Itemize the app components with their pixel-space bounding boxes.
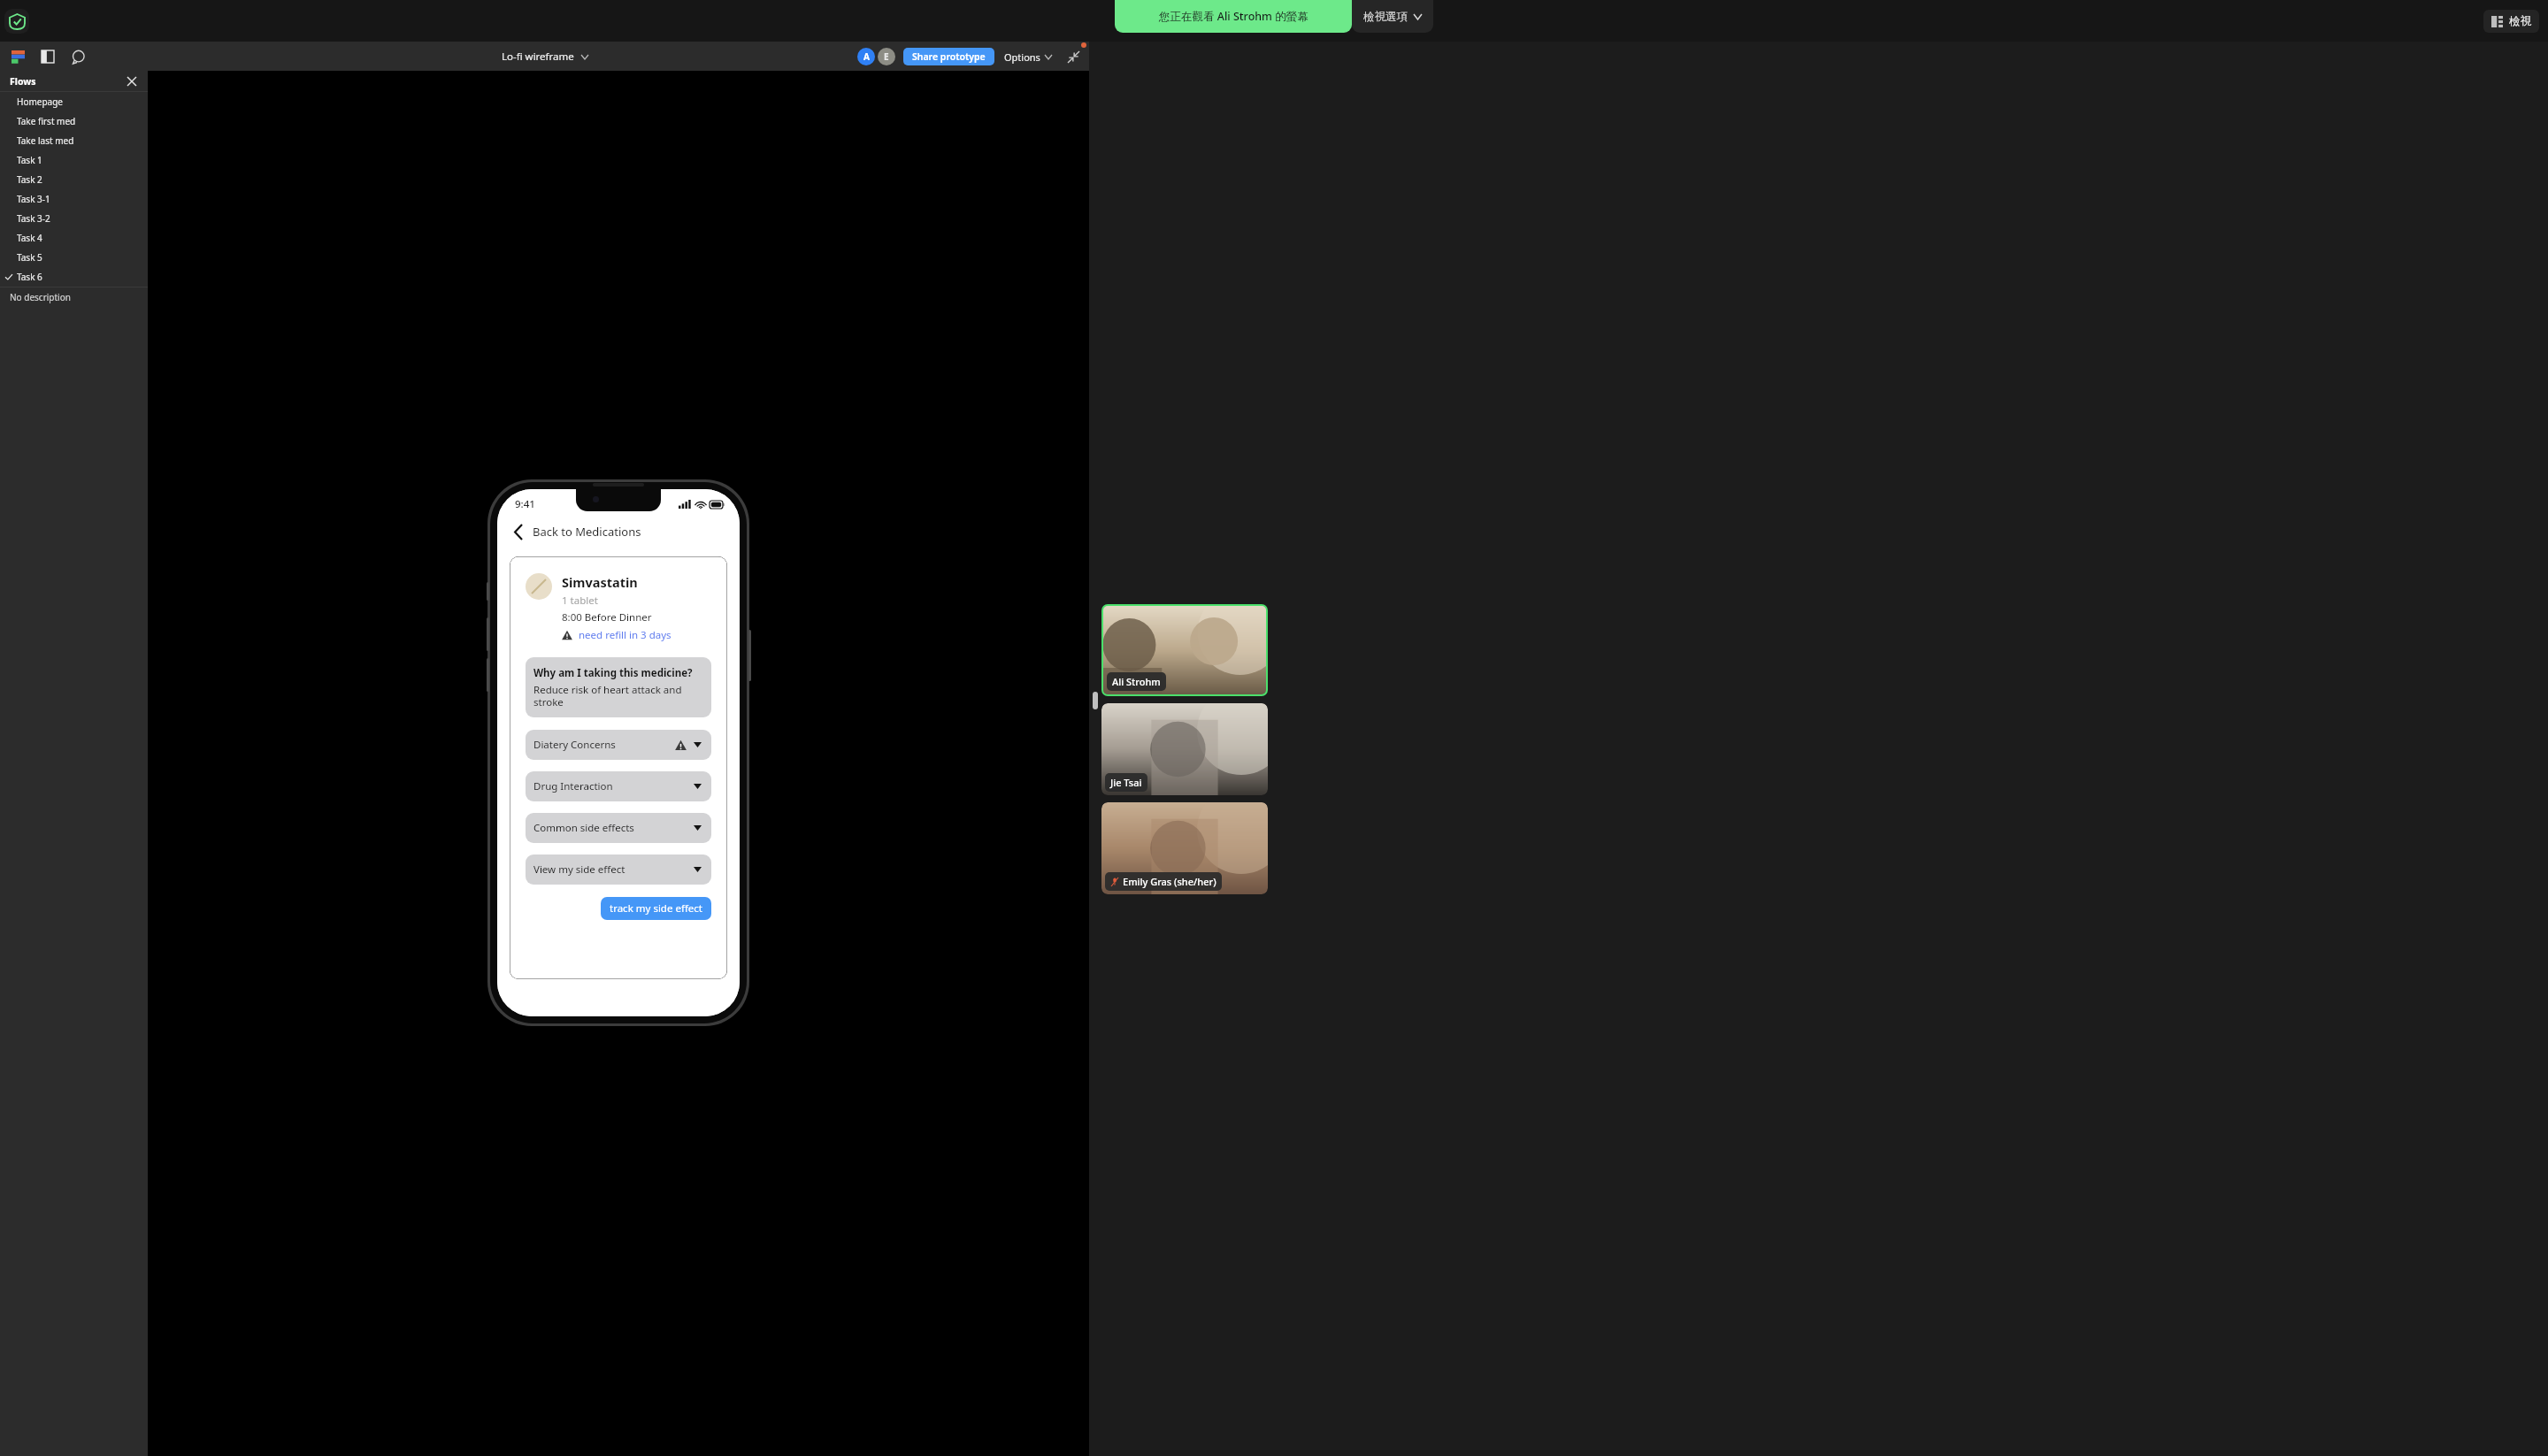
staticText: Task 4 (17, 232, 42, 244)
button[interactable]: Task 5 (0, 248, 148, 267)
button[interactable]: Participant Jie Tsai (1101, 703, 1268, 795)
button[interactable]: Participant Emily Gras (she/her) (1101, 802, 1268, 894)
button[interactable]: Back (497, 518, 740, 545)
staticText: Task 3-1 (17, 193, 50, 205)
staticText: Flows (10, 75, 36, 88)
staticText: Common side effects (533, 821, 634, 835)
button[interactable]: Toggle sidebar (37, 46, 58, 67)
staticText: 您正在觀看 Ali Strohm 的螢幕 (1159, 9, 1309, 24)
staticText: Lo-fi wireframe (502, 50, 574, 64)
staticText: Simvastatin (562, 573, 638, 591)
staticText: need refill in 3 days (579, 628, 672, 642)
staticText: Task 2 (17, 173, 42, 186)
button[interactable]: 檢視 (2483, 10, 2539, 33)
button[interactable]: Collapse video panel (1093, 692, 1098, 709)
staticText: View my side effect (533, 862, 625, 877)
staticText: Task 5 (17, 251, 42, 264)
staticText: A (863, 50, 870, 63)
button[interactable]: Close flows (124, 73, 140, 89)
staticText: Ali Strohm (1112, 675, 1161, 688)
staticText: Emily Gras (she/her) (1123, 875, 1216, 888)
staticText: Back to Medications (533, 524, 641, 540)
staticText: 8:00 Before Dinner (562, 610, 652, 625)
button[interactable]: Task 4 (0, 228, 148, 248)
button[interactable]: Take first med (0, 111, 148, 131)
staticText: Homepage (17, 96, 63, 108)
staticText: 檢視 (2509, 14, 2531, 28)
staticText: Take last med (17, 134, 74, 147)
staticText: E (884, 50, 889, 63)
button[interactable]: File menu (581, 55, 588, 59)
staticText: Task 1 (17, 154, 42, 166)
staticText: Share prototype (912, 50, 986, 63)
button[interactable]: Drug Interaction (526, 771, 711, 801)
button[interactable]: Exit full screen (1064, 48, 1082, 65)
staticText: Task 6 (17, 271, 42, 283)
button[interactable]: 檢視選項 (1352, 0, 1433, 33)
button[interactable]: need refill in 3 days (562, 628, 672, 642)
button[interactable]: Share prototype (903, 48, 994, 65)
button[interactable]: Take last med (0, 131, 148, 150)
staticText: 9:41 (515, 497, 535, 511)
staticText: Jie Tsai (1110, 776, 1142, 789)
staticText: Why am I taking this medicine? (533, 666, 693, 680)
other: Back (510, 523, 527, 540)
button[interactable]: View my side effect (526, 854, 711, 885)
button[interactable]: Common side effects (526, 813, 711, 843)
button[interactable]: Figma menu (7, 46, 28, 67)
button[interactable]: Task 2 (0, 170, 148, 189)
staticText: No description (10, 291, 71, 303)
button[interactable]: Diatery Concerns (526, 730, 711, 760)
button[interactable]: Why am I taking this medicine? (526, 657, 711, 717)
staticText: Take first med (17, 115, 76, 127)
button[interactable]: track my side effect (601, 897, 711, 920)
staticText: Options (1004, 50, 1040, 64)
staticText: Diatery Concerns (533, 738, 616, 752)
button[interactable]: Homepage (0, 92, 148, 111)
button[interactable]: Participant Ali Strohm (1101, 604, 1268, 696)
button[interactable]: Task 3-2 (0, 209, 148, 228)
button[interactable]: Options (1004, 50, 1052, 64)
staticText: 1 tablet (562, 594, 598, 608)
staticText: Drug Interaction (533, 779, 613, 793)
button[interactable]: Task 3-1 (0, 189, 148, 209)
button[interactable]: Meeting security (4, 9, 29, 34)
button[interactable]: E (878, 48, 895, 65)
button[interactable]: Task 1 (0, 150, 148, 170)
staticText: Task 3-2 (17, 212, 50, 225)
staticText: 檢視選項 (1363, 10, 1408, 24)
button[interactable]: Comments (67, 46, 88, 67)
button[interactable]: 您正在觀看 Ali Strohm 的螢幕 (1115, 0, 1352, 33)
button[interactable]: A (857, 48, 875, 65)
button[interactable]: Task 6 (0, 267, 148, 287)
staticText: track my side effect (610, 901, 702, 916)
staticText: Reduce risk of heart attack and stroke (533, 683, 703, 709)
